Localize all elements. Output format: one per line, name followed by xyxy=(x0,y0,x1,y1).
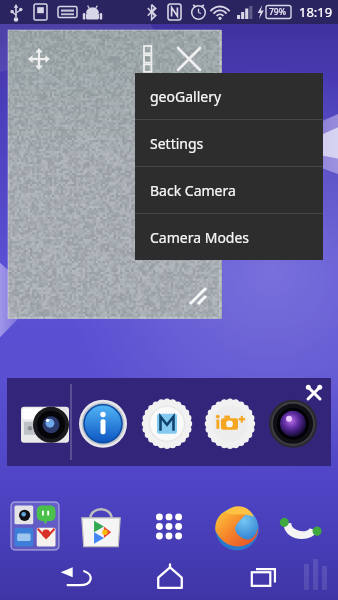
button[interactable]: Folder xyxy=(11,502,59,550)
button[interactable]: Apps xyxy=(145,502,193,550)
button[interactable]: Play Store xyxy=(77,502,125,550)
button[interactable]: Camera Modes xyxy=(135,214,323,260)
staticText: Back Camera xyxy=(150,181,236,200)
staticText: 18:19 xyxy=(299,3,333,21)
button[interactable]: Home xyxy=(149,560,191,594)
button[interactable]: Settings xyxy=(135,120,323,166)
button[interactable]: Phone xyxy=(279,502,327,550)
staticText: Settings xyxy=(150,134,204,153)
button[interactable]: Firefox xyxy=(210,499,264,553)
button[interactable] xyxy=(7,378,331,466)
button[interactable]: Back Camera xyxy=(135,167,323,213)
button[interactable]: Recents xyxy=(243,560,285,594)
button[interactable]: geoGallery xyxy=(135,73,323,119)
button[interactable]: Back xyxy=(52,560,98,594)
staticText: Camera Modes xyxy=(150,228,250,247)
staticText: 79% xyxy=(269,6,286,18)
staticText: geoGallery xyxy=(150,87,222,106)
button[interactable]: Camera widget viewfinder xyxy=(8,30,220,318)
